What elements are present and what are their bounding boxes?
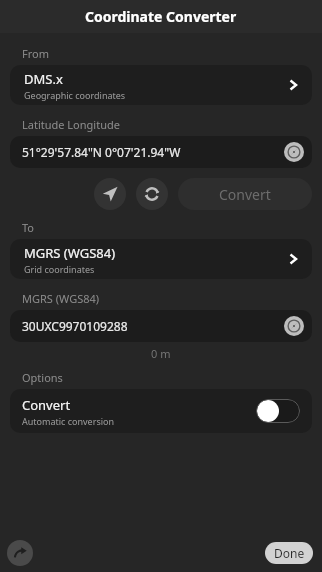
staticText: 51°29'57.84"N 0°07'21.94"W [22, 144, 284, 160]
button[interactable]: 30UXC9970109288 [10, 310, 312, 342]
button[interactable]: Done [265, 542, 313, 564]
button[interactable]: Show on map [284, 316, 304, 336]
button[interactable]: Use current location [94, 178, 126, 210]
staticText: Latitude Longitude [22, 117, 120, 132]
staticText: From [22, 46, 49, 61]
staticText: MGRS (WGS84) [24, 244, 116, 262]
staticText: Automatic conversion [22, 415, 115, 427]
button[interactable]: DMS.x [10, 65, 312, 105]
button[interactable]: MGRS (WGS84) [10, 239, 312, 279]
staticText: Convert [219, 185, 271, 204]
staticText: 30UXC9970109288 [22, 318, 284, 334]
staticText: MGRS (WGS84) [22, 291, 100, 306]
staticText: Options [22, 370, 63, 385]
staticText: Geographic coordinates [24, 89, 126, 101]
button[interactable]: Swap units [136, 178, 168, 210]
staticText: Done [274, 545, 305, 561]
button[interactable]: Show on map [284, 142, 304, 162]
staticText: To [22, 220, 35, 235]
staticText: Convert [22, 396, 71, 414]
button[interactable]: 51°29'57.84"N 0°07'21.94"W [10, 136, 312, 168]
button[interactable]: Convert [10, 389, 312, 433]
button[interactable]: Share [7, 540, 33, 566]
staticText: Grid coordinates [24, 263, 95, 275]
staticText: 0 m [151, 346, 171, 361]
staticText: DMS.x [24, 70, 63, 88]
staticText: Coordinate Converter [85, 7, 237, 26]
button[interactable]: Convert [178, 178, 312, 210]
